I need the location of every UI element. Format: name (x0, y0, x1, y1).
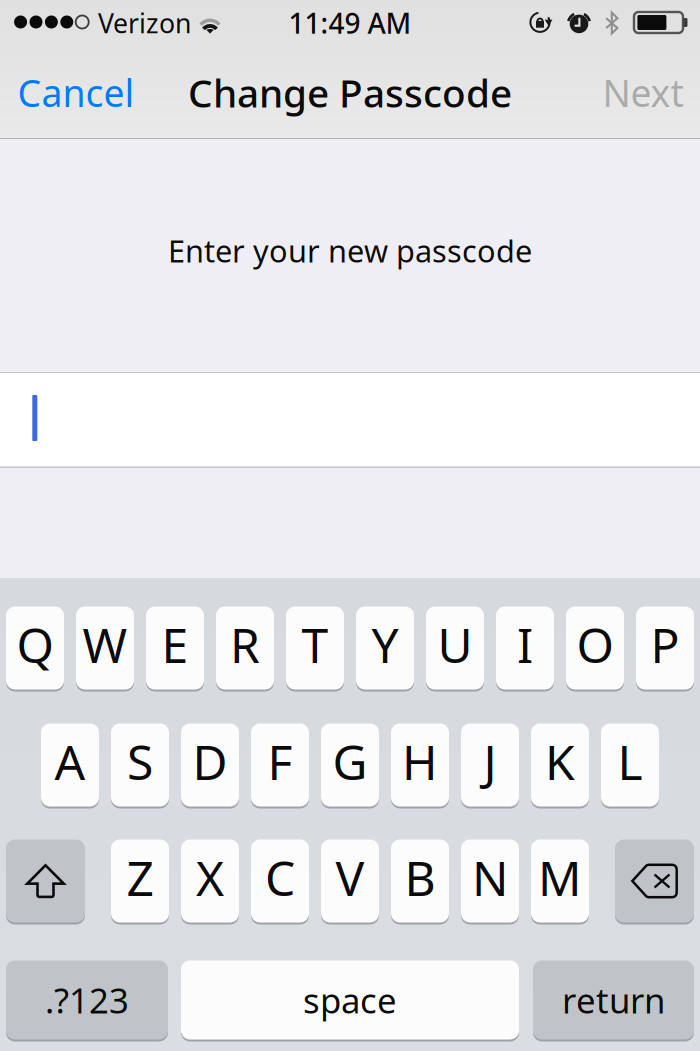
staticText: H (402, 730, 438, 793)
button[interactable]: N (461, 838, 519, 924)
button[interactable]: D (181, 722, 239, 808)
staticText: I (517, 613, 533, 676)
staticText: Verizon (98, 5, 191, 41)
staticText: Cancel (17, 68, 134, 117)
staticText: O (576, 613, 613, 676)
button[interactable]: S (111, 722, 169, 808)
staticText: X (196, 846, 224, 909)
button[interactable]: G (321, 722, 379, 808)
button[interactable]: U (426, 605, 484, 691)
button[interactable]: .?123 (6, 959, 168, 1041)
staticText: Y (371, 613, 398, 676)
staticText: U (437, 613, 472, 676)
staticText: return (562, 977, 665, 1023)
button[interactable]: Z (111, 838, 169, 924)
staticText: Enter your new passcode (168, 230, 532, 271)
button[interactable]: W (76, 605, 134, 691)
staticText: L (617, 730, 642, 793)
staticText: D (192, 730, 227, 793)
button[interactable]: F (251, 722, 309, 808)
button[interactable]: return (533, 959, 694, 1041)
staticText: M (538, 846, 582, 909)
button[interactable]: Delete (615, 838, 694, 924)
staticText: J (483, 730, 496, 793)
staticText: S (127, 730, 153, 793)
button[interactable]: I (496, 605, 554, 691)
button[interactable]: Shift (6, 838, 85, 924)
staticText: A (54, 730, 85, 793)
staticText: V (335, 846, 364, 909)
staticText: W (82, 613, 127, 676)
staticText: Change Passcode (188, 67, 512, 118)
button[interactable]: V (321, 838, 379, 924)
staticText: Next (602, 68, 683, 117)
button[interactable]: X (181, 838, 239, 924)
staticText: K (545, 730, 575, 793)
button[interactable]: space (181, 959, 519, 1041)
staticText: C (265, 846, 295, 909)
button[interactable]: Next (583, 46, 700, 139)
button[interactable]: A (41, 722, 99, 808)
staticText: T (301, 613, 328, 676)
staticText: .?123 (45, 977, 129, 1023)
button[interactable]: T (286, 605, 344, 691)
staticText: F (267, 730, 292, 793)
button[interactable]: R (216, 605, 274, 691)
button[interactable]: J (461, 722, 519, 808)
button[interactable]: Cancel (8, 46, 144, 139)
staticText: 11:49 AM (288, 4, 411, 42)
staticText: R (230, 613, 260, 676)
button[interactable]: L (601, 722, 659, 808)
button[interactable]: Q (6, 605, 64, 691)
staticText: space (303, 977, 397, 1023)
staticText: P (650, 613, 679, 676)
button[interactable]: M (531, 838, 589, 924)
button[interactable]: Y (356, 605, 414, 691)
button[interactable]: B (391, 838, 449, 924)
button[interactable]: C (251, 838, 309, 924)
button[interactable]: P (636, 605, 694, 691)
button[interactable]: H (391, 722, 449, 808)
staticText: N (472, 846, 508, 909)
button[interactable]: K (531, 722, 589, 808)
button[interactable]: O (566, 605, 624, 691)
staticText: Q (16, 613, 53, 676)
staticText: E (161, 613, 188, 676)
staticText: G (332, 730, 367, 793)
staticText: Z (126, 846, 153, 909)
staticText: B (404, 846, 435, 909)
button[interactable]: E (146, 605, 204, 691)
